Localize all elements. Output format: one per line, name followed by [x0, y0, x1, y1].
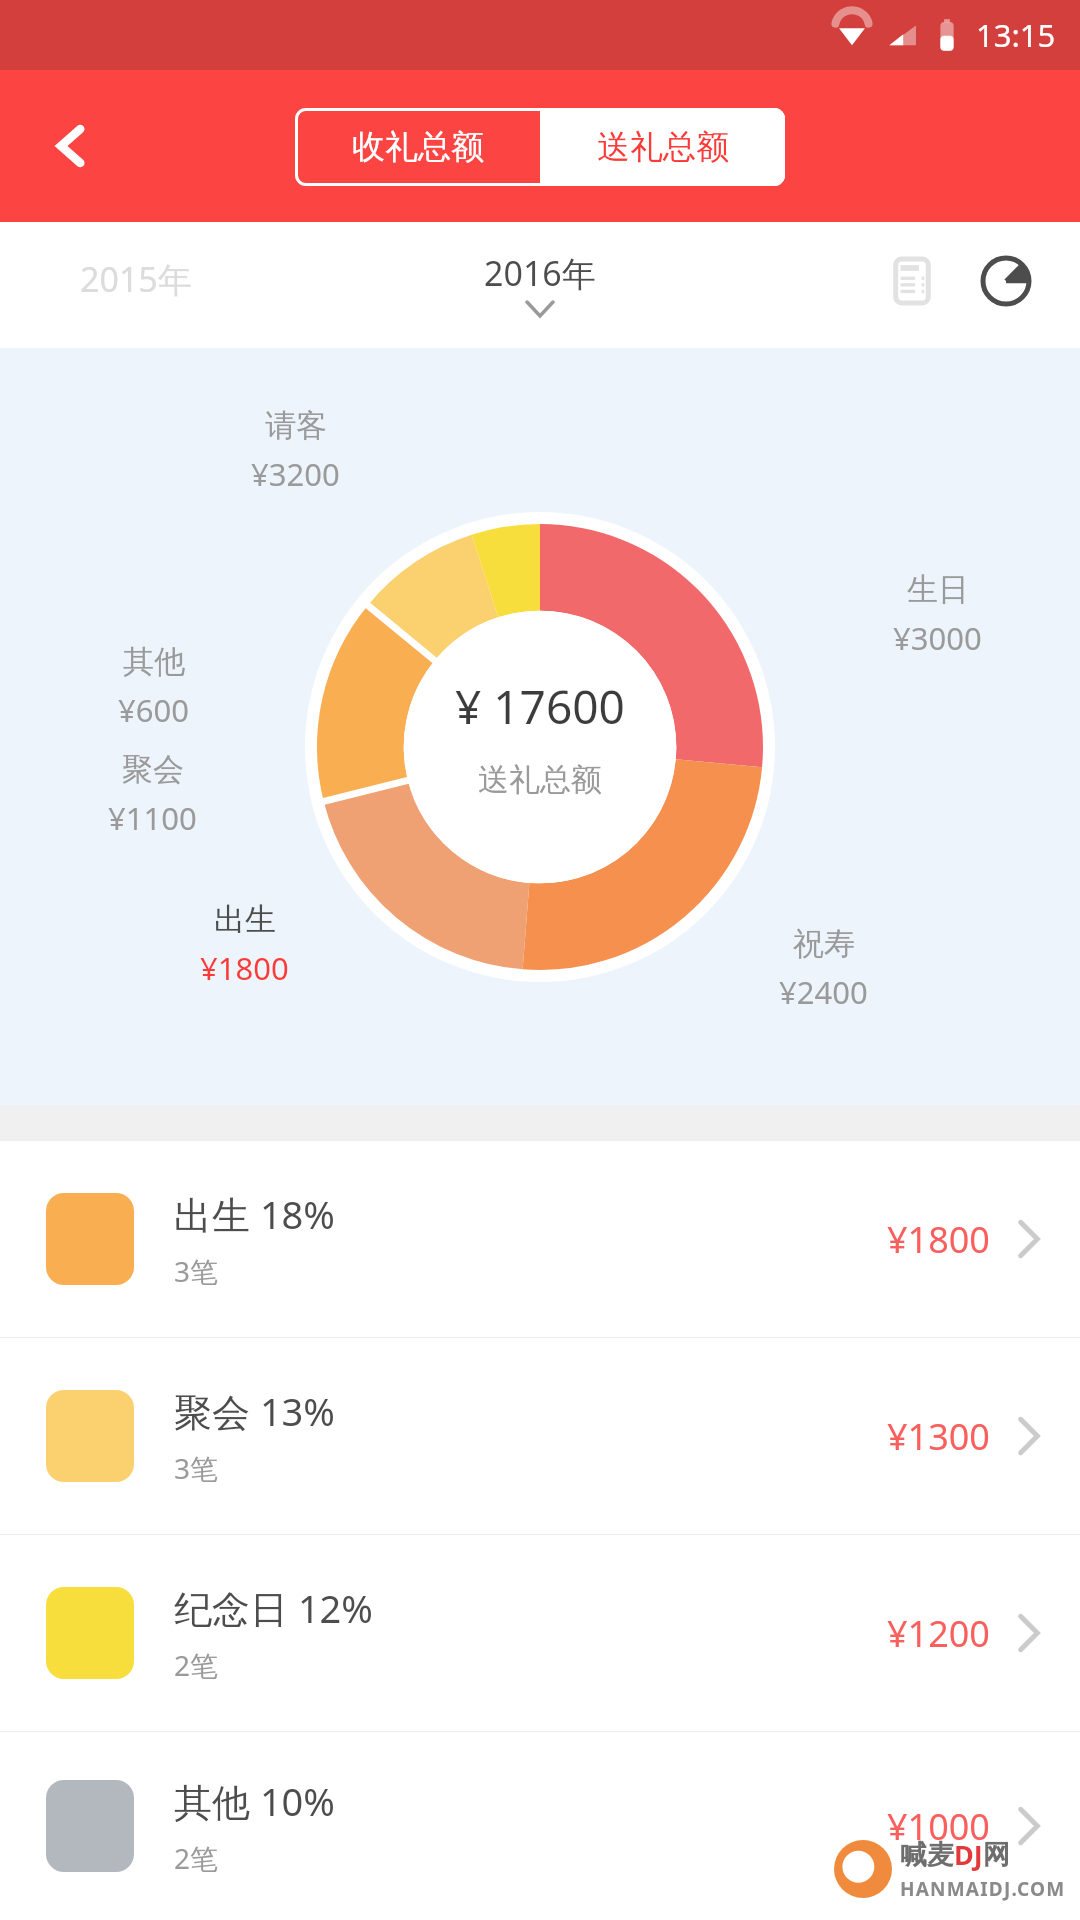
staticText: 送礼总额 — [597, 126, 729, 168]
button[interactable]: Chart view — [970, 245, 1042, 317]
button[interactable]: 2015年 — [80, 256, 192, 302]
staticText: 聚会 — [122, 750, 184, 789]
staticText: 2笔 — [174, 1839, 219, 1877]
staticText: 出生 — [214, 900, 276, 939]
staticText: 2笔 — [174, 1646, 219, 1684]
staticText: 喊麦 — [900, 1838, 954, 1872]
staticText: 3笔 — [174, 1449, 219, 1487]
staticText: ¥1300 — [887, 1412, 990, 1461]
staticText: HANMAIDJ.COM — [900, 1876, 1066, 1902]
staticText: ¥600 — [118, 689, 189, 731]
staticText: ¥3000 — [893, 617, 982, 659]
staticText: ¥2400 — [779, 971, 868, 1013]
button[interactable]: 送礼总额 — [540, 108, 785, 186]
staticText: 生日 — [907, 570, 969, 609]
staticText: 出生 18% — [174, 1188, 335, 1240]
staticText: 其他 — [123, 642, 185, 681]
button[interactable]: 纪念日 12% — [0, 1535, 1080, 1731]
staticText: ¥3200 — [251, 453, 340, 495]
button[interactable]: 聚会 13% — [0, 1338, 1080, 1534]
staticText: 2016年 — [484, 250, 596, 296]
staticText: ¥ 17600 — [455, 675, 625, 738]
staticText: 收礼总额 — [352, 126, 484, 168]
staticText: 祝寿 — [793, 924, 855, 963]
staticText: 2015年 — [80, 256, 192, 302]
staticText: ¥1800 — [200, 947, 289, 989]
staticText: 3笔 — [174, 1252, 219, 1290]
staticText: ¥1100 — [108, 797, 197, 839]
button[interactable]: List view — [876, 245, 948, 317]
staticText: 其他 10% — [174, 1775, 335, 1827]
staticText: 聚会 13% — [174, 1385, 335, 1437]
button[interactable]: 出生 18% — [0, 1141, 1080, 1337]
button[interactable]: 其他 10% — [0, 1732, 1080, 1920]
staticText: 纪念日 12% — [174, 1582, 373, 1634]
button[interactable]: Back — [34, 108, 110, 184]
button[interactable]: 2016年 — [484, 250, 596, 316]
staticText: DJ — [954, 1836, 983, 1873]
staticText: 13:15 — [976, 14, 1056, 56]
staticText: ¥1800 — [887, 1215, 990, 1264]
staticText: ¥1200 — [887, 1609, 990, 1658]
staticText: 请客 — [265, 406, 327, 445]
staticText: 网 — [983, 1838, 1010, 1872]
button[interactable]: 收礼总额 — [295, 108, 540, 186]
staticText: 送礼总额 — [478, 760, 602, 799]
staticText: ¥1000 — [887, 1802, 990, 1851]
